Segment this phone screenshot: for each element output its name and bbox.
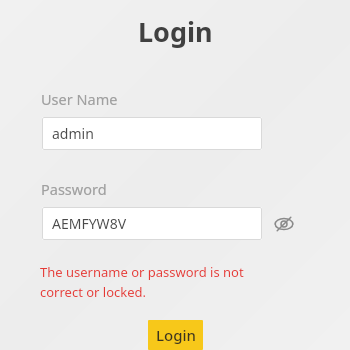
- staticText: The username or password is not correct …: [40, 263, 285, 301]
- button[interactable]: Show password: [269, 209, 299, 239]
- button[interactable]: Login: [148, 320, 203, 350]
- staticText: admin: [52, 124, 94, 143]
- button[interactable]: admin: [42, 117, 262, 150]
- staticText: User Name: [41, 89, 118, 109]
- staticText: Password: [41, 179, 107, 199]
- staticText: Login: [138, 13, 213, 50]
- button[interactable]: AEMFYW8V: [42, 207, 262, 240]
- staticText: Login: [156, 325, 196, 345]
- staticText: AEMFYW8V: [52, 214, 127, 233]
